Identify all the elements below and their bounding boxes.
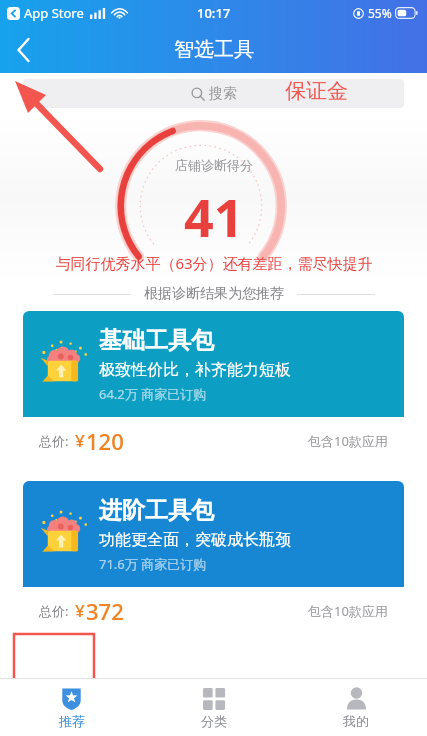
staticText: 41 <box>184 181 244 252</box>
other: 推荐 <box>60 687 83 710</box>
staticText: 10:17 <box>197 4 231 22</box>
button[interactable]: 推荐 <box>0 679 143 736</box>
staticText: 店铺诊断得分 <box>175 157 253 173</box>
staticText: 总价: <box>39 432 69 450</box>
staticText: 智选工具 <box>174 37 254 62</box>
other: 我的 <box>345 687 368 710</box>
staticText: 包含10款应用 <box>308 602 388 620</box>
button[interactable]: 进阶工具包 <box>23 481 404 634</box>
staticText: 保证金 <box>285 78 348 104</box>
staticText: 与同行优秀水平（63分）还有差距，需尽快提升 <box>55 253 373 273</box>
staticText: 进阶工具包 <box>99 496 214 525</box>
staticText: 根据诊断结果为您推荐 <box>144 285 284 303</box>
staticText: App Store <box>24 4 84 22</box>
staticText: 功能更全面，突破成长瓶颈 <box>99 530 291 550</box>
staticText: 64.2万 商家已订购 <box>99 385 207 403</box>
staticText: 包含10款应用 <box>308 432 388 450</box>
button[interactable]: 分类 <box>143 679 285 736</box>
staticText: 推荐 <box>59 713 85 729</box>
staticText: 我的 <box>343 713 369 729</box>
staticText: 搜索 <box>209 85 237 103</box>
button[interactable]: 搜索 <box>23 79 404 108</box>
button[interactable]: 我的 <box>285 679 427 736</box>
button[interactable]: Back <box>0 27 46 73</box>
staticText: ¥ <box>75 599 85 622</box>
staticText: 55% <box>368 5 392 21</box>
staticText: 极致性价比，补齐能力短板 <box>99 360 291 380</box>
staticText: 分类 <box>201 713 227 729</box>
staticText: 基础工具包 <box>99 326 214 355</box>
button[interactable]: 基础工具包 <box>23 311 404 464</box>
staticText: ¥ <box>75 429 85 452</box>
other: 分类 <box>203 687 226 710</box>
staticText: 372 <box>86 596 124 626</box>
staticText: 71.6万 商家已订购 <box>99 555 207 573</box>
staticText: 120 <box>86 426 124 456</box>
staticText: 总价: <box>39 602 69 620</box>
